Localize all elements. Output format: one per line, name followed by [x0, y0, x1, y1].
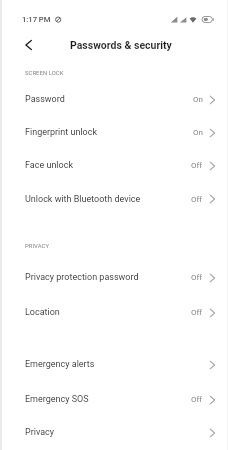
button[interactable]: Password — [0, 83, 228, 116]
staticText: On — [193, 95, 203, 104]
staticText: Privacy protection password — [25, 272, 139, 283]
staticText: Face unlock — [25, 160, 73, 171]
button[interactable]: Privacy protection password — [0, 260, 228, 295]
button[interactable]: Fingerprint unlock — [0, 116, 228, 149]
staticText: 1:17 PM — [22, 15, 51, 24]
staticText: On — [193, 128, 203, 137]
staticText: Off — [191, 161, 203, 170]
staticText: SCREEN LOCK — [25, 70, 64, 77]
staticText: Off — [191, 195, 203, 204]
button[interactable]: Face unlock — [0, 149, 228, 182]
button[interactable]: Location — [0, 295, 228, 330]
staticText: Privacy — [25, 427, 55, 438]
button[interactable]: Unlock with Bluetooth device — [0, 182, 228, 216]
staticText: Off — [191, 273, 203, 282]
staticText: Emergency alerts — [25, 359, 95, 370]
staticText: Password — [25, 94, 65, 105]
staticText: Passwords & security — [70, 39, 172, 51]
button[interactable]: Emergency alerts — [0, 348, 228, 381]
staticText: Unlock with Bluetooth device — [25, 194, 141, 205]
button[interactable]: Privacy — [0, 416, 228, 449]
button[interactable]: Emergency SOS — [0, 383, 228, 416]
button[interactable] — [21, 38, 35, 52]
staticText: Off — [191, 395, 203, 404]
staticText: Fingerprint unlock — [25, 127, 97, 138]
staticText: Location — [25, 307, 60, 318]
staticText: Off — [191, 308, 203, 317]
staticText: Emergency SOS — [25, 394, 89, 405]
staticText: PRIVACY — [25, 243, 50, 250]
